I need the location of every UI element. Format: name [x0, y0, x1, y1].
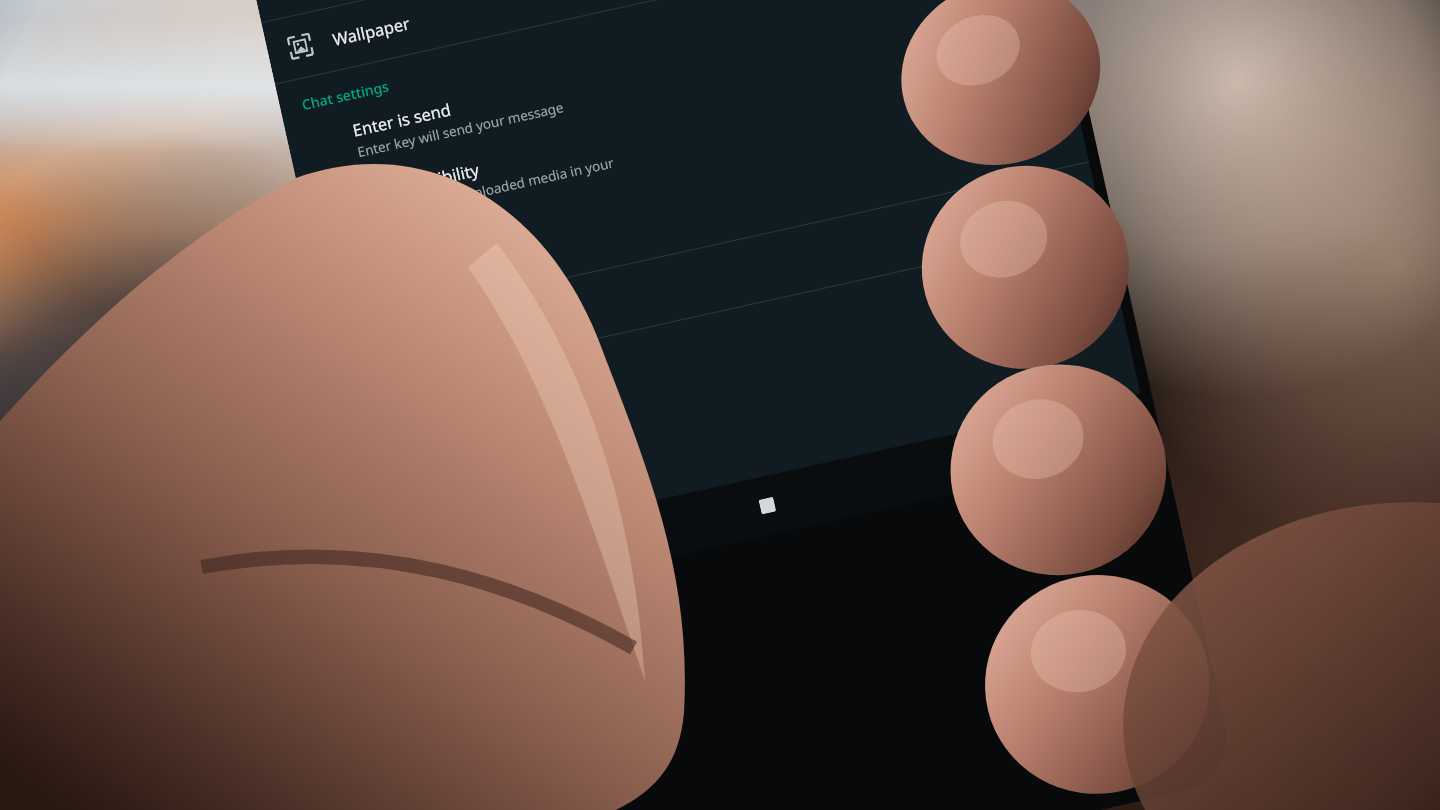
button[interactable]: Theme: [247, 0, 1021, 22]
button[interactable]: Chat history: [357, 287, 1130, 516]
staticText: Phone's language (English): [402, 315, 573, 369]
staticText: Wallpaper: [330, 11, 412, 50]
staticText: Enter is send: [350, 98, 453, 141]
staticText: Show newly downloaded media in your phon…: [370, 153, 620, 241]
button[interactable]: Recents: [736, 474, 798, 536]
staticText: Chat settings: [300, 76, 391, 114]
button[interactable]: Chat backup: [344, 227, 1117, 456]
button[interactable]: Font size: [315, 98, 1089, 330]
staticText: Chat history: [426, 441, 523, 482]
button[interactable]: Enter is send: [284, 0, 1057, 186]
button[interactable]: On: [987, 0, 1035, 13]
staticText: Enter key will send your message: [356, 98, 566, 161]
staticText: Chat backup: [413, 379, 512, 422]
button[interactable]: Media visibility: [298, 18, 1075, 266]
button[interactable]: Wallpaper: [261, 0, 1034, 84]
staticText: Media visibility: [364, 158, 481, 204]
button[interactable]: App Language: [330, 162, 1103, 394]
staticText: App Language: [396, 303, 512, 349]
